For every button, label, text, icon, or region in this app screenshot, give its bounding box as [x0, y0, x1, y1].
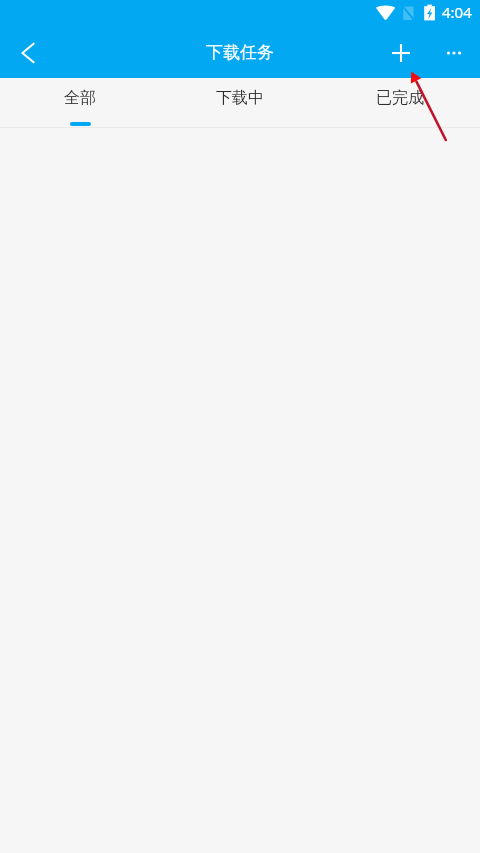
staticText: 下载任务 — [206, 42, 274, 63]
button[interactable]: 已完成 — [320, 78, 480, 127]
staticText: 已完成 — [376, 88, 424, 108]
button[interactable]: More options — [430, 29, 478, 77]
button[interactable]: 全部 — [0, 78, 160, 127]
button[interactable]: Back — [1, 28, 55, 78]
button[interactable]: Add download task — [377, 29, 425, 77]
staticText: 下载中 — [216, 88, 264, 108]
button[interactable]: 下载中 — [160, 78, 320, 127]
staticText: 全部 — [64, 88, 96, 108]
staticText: 4:04 — [442, 2, 472, 22]
